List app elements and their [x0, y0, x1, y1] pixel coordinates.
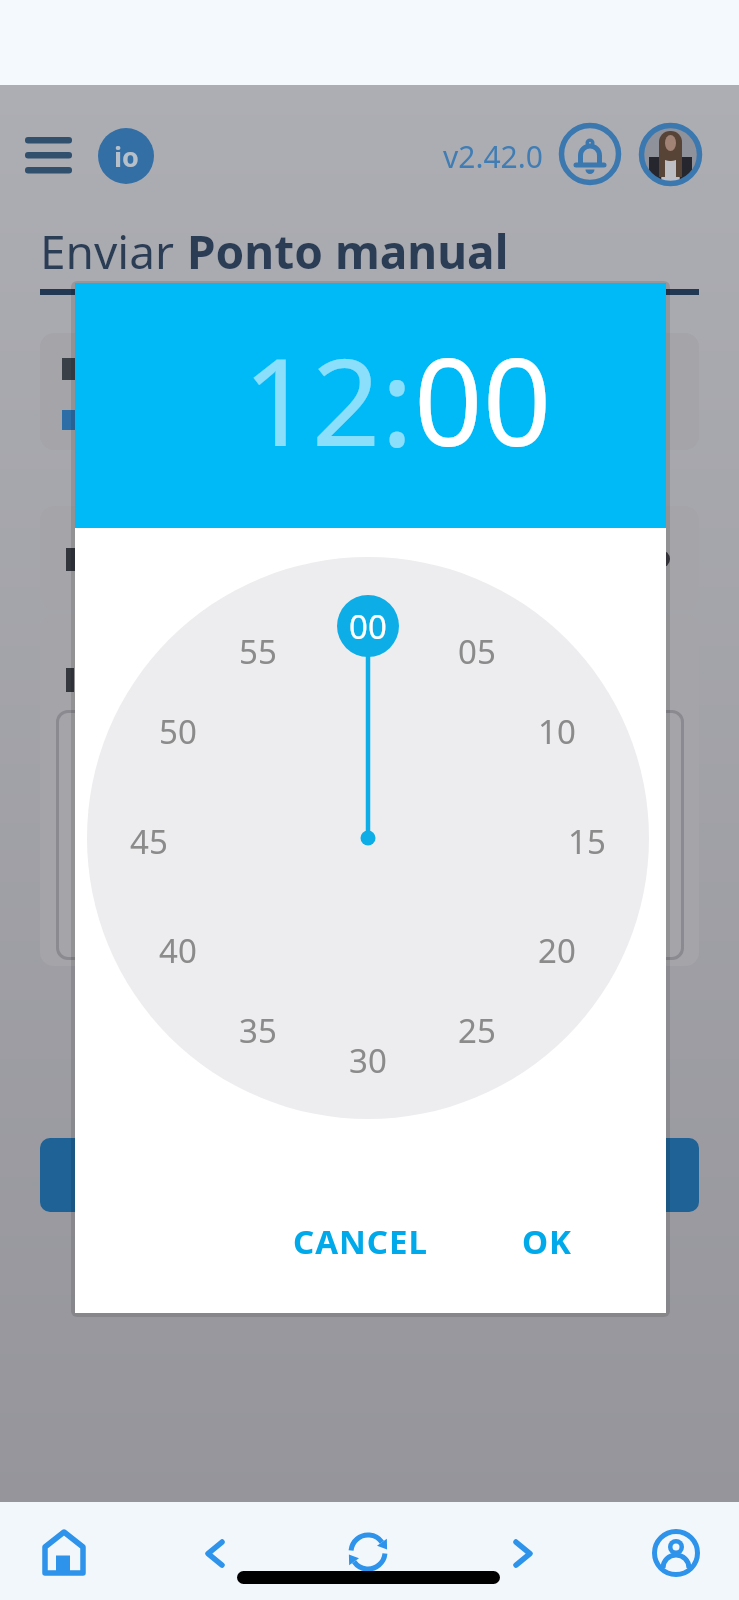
button[interactable]: OK: [497, 1211, 597, 1271]
staticText: 15: [568, 819, 606, 863]
button[interactable]: [652, 1529, 700, 1577]
staticText: OK: [522, 1219, 573, 1264]
button[interactable]: [506, 1536, 538, 1568]
staticText: 20: [538, 928, 576, 972]
button[interactable]: [200, 1536, 232, 1568]
button[interactable]: [639, 123, 702, 186]
staticText: 12: [243, 318, 381, 481]
button[interactable]: 00: [337, 595, 399, 657]
staticText: Enviar: [40, 220, 187, 282]
staticText: 25: [458, 1008, 496, 1052]
staticText: 00: [414, 318, 552, 481]
staticText: 35: [239, 1008, 277, 1052]
button[interactable]: CANCEL: [270, 1211, 450, 1271]
staticText: 05: [458, 629, 496, 673]
staticText: Ponto manual: [187, 220, 509, 282]
staticText: 50: [159, 709, 197, 753]
staticText: v2.42.0: [443, 136, 543, 177]
staticText: io: [114, 138, 139, 175]
staticText: 30: [349, 1038, 387, 1082]
staticText: 55: [239, 629, 277, 673]
staticText: 00: [349, 604, 387, 649]
staticText: 10: [538, 709, 576, 753]
button[interactable]: [344, 1528, 392, 1576]
button[interactable]: [20, 130, 78, 182]
button[interactable]: io: [98, 128, 154, 184]
button[interactable]: [40, 1528, 88, 1576]
staticText: 40: [159, 928, 197, 972]
staticText: :: [381, 318, 414, 481]
staticText: CANCEL: [293, 1219, 428, 1264]
button[interactable]: [40, 1138, 699, 1212]
staticText: 45: [130, 819, 168, 863]
button[interactable]: [558, 122, 622, 186]
